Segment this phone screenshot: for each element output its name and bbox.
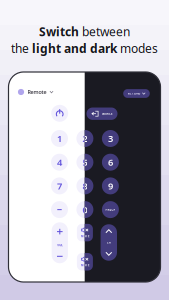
- staticText: Switch: [39, 24, 79, 39]
- button[interactable]: 2: [76, 130, 93, 147]
- staticText: the: [11, 40, 29, 56]
- staticText: Remote: [27, 88, 46, 96]
- button[interactable]: ACTIONS: [123, 89, 150, 98]
- button[interactable]: Power: [51, 105, 68, 122]
- staticText: PRE-CH: [105, 208, 115, 211]
- staticText: VOL: [57, 243, 62, 247]
- staticText: light and dark: [32, 40, 117, 56]
- staticText: 5: [82, 156, 87, 168]
- button[interactable]: Channel: [101, 224, 117, 261]
- staticText: MUTE: [81, 234, 89, 238]
- button[interactable]: 1: [51, 130, 68, 147]
- button[interactable]: Remote: [18, 88, 53, 96]
- button[interactable]: 7: [51, 177, 68, 194]
- button[interactable]: 2: [76, 130, 93, 147]
- button[interactable]: 0: [76, 201, 93, 218]
- button[interactable]: SOURCE: [86, 107, 117, 120]
- button[interactable]: 4: [51, 154, 68, 171]
- button[interactable]: PRE-CH: [102, 201, 119, 218]
- button[interactable]: PRE-CH: [102, 201, 119, 218]
- staticText: 9: [108, 180, 113, 192]
- staticText: 7: [57, 180, 62, 192]
- button[interactable]: 1: [51, 130, 68, 147]
- button[interactable]: 3: [102, 130, 119, 147]
- button[interactable]: ACTIONS: [123, 89, 150, 98]
- staticText: 6: [108, 156, 113, 168]
- staticText: 4: [57, 156, 62, 168]
- staticText: ACTIONS: [128, 92, 140, 95]
- staticText: 1: [57, 132, 62, 145]
- button[interactable]: SOURCE: [86, 107, 117, 120]
- staticText: PRE-CH: [105, 208, 115, 211]
- staticText: MUTE: [81, 263, 89, 267]
- button[interactable]: 4: [51, 154, 68, 171]
- button[interactable]: 8: [76, 177, 93, 194]
- staticText: SOURCE: [102, 112, 112, 115]
- button[interactable]: Channel: [101, 224, 117, 261]
- staticText: 2: [82, 132, 87, 145]
- button[interactable]: Mute: [77, 224, 93, 241]
- staticText: 5: [82, 156, 87, 168]
- staticText: modes: [120, 40, 158, 56]
- button[interactable]: Volume: [52, 222, 68, 263]
- staticText: MUTE: [81, 234, 89, 238]
- staticText: SOURCE: [102, 112, 112, 115]
- staticText: 7: [57, 180, 62, 192]
- staticText: 9: [108, 180, 113, 192]
- staticText: 8: [82, 180, 87, 192]
- button[interactable]: 6: [102, 154, 119, 171]
- button[interactable]: Remote: [18, 88, 53, 96]
- staticText: 1: [57, 132, 62, 145]
- staticText: ACTIONS: [128, 92, 140, 95]
- staticText: 3: [108, 132, 113, 145]
- staticText: between: [82, 24, 130, 39]
- button[interactable]: 7: [51, 177, 68, 194]
- button[interactable]: 5: [76, 154, 93, 171]
- button[interactable]: 9: [102, 177, 119, 194]
- button[interactable]: Mute: [77, 253, 93, 271]
- staticText: 3: [108, 132, 113, 145]
- staticText: MUTE: [81, 263, 89, 267]
- staticText: 2: [82, 132, 87, 145]
- button[interactable]: 5: [76, 154, 93, 171]
- staticText: VOL: [57, 243, 62, 247]
- button[interactable]: Mute: [77, 253, 93, 271]
- staticText: 0: [82, 203, 87, 216]
- button[interactable]: 8: [76, 177, 93, 194]
- button[interactable]: 3: [102, 130, 119, 147]
- button[interactable]: 9: [102, 177, 119, 194]
- button[interactable]: Power: [51, 105, 68, 122]
- staticText: 4: [57, 156, 62, 168]
- button[interactable]: Mute: [77, 224, 93, 241]
- button[interactable]: Dash: [51, 201, 68, 218]
- staticText: Remote: [27, 88, 46, 96]
- staticText: 8: [82, 180, 87, 192]
- staticText: 6: [108, 156, 113, 168]
- button[interactable]: 6: [102, 154, 119, 171]
- staticText: CH: [107, 241, 111, 244]
- staticText: CH: [107, 241, 111, 244]
- button[interactable]: Dash: [51, 201, 68, 218]
- staticText: 0: [82, 203, 87, 216]
- button[interactable]: 0: [76, 201, 93, 218]
- button[interactable]: Volume: [52, 222, 68, 263]
